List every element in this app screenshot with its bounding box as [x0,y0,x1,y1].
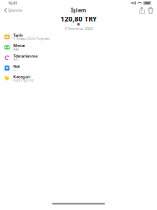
staticText: — [13,68,16,72]
staticText: İşlem [71,7,86,14]
staticText: 9 Temmuz 2024 [64,26,92,31]
staticText: 9 Temmuz 2024 Perşembe [13,37,50,41]
staticText: Kişisel Eğlence [13,79,34,82]
staticText: Kategori [13,74,30,79]
button[interactable]: İşlemler [2,6,26,14]
staticText: Not [13,64,20,69]
staticText: 120,80 TRY [60,15,96,23]
staticText: Yok [13,58,17,61]
staticText: 16:41 [8,0,17,6]
button[interactable]: Tarih [0,32,157,42]
staticText: Metot [13,43,25,48]
button[interactable]: Share [137,5,146,15]
button[interactable]: Metot [0,42,157,52]
button[interactable]: Kategori [0,73,157,84]
button[interactable]: Not [0,63,157,73]
staticText: Tarih [13,32,23,38]
staticText: Nakit [13,48,19,51]
staticText: Tekrarlanma [13,53,37,58]
button[interactable]: Tekrarlanma [0,52,157,63]
button[interactable]: Delete [146,5,155,15]
staticText: İşlemler [8,8,23,13]
